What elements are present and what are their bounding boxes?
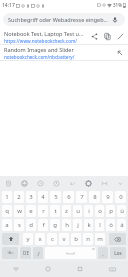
staticText: v xyxy=(62,235,66,243)
staticText: / xyxy=(37,250,40,257)
button[interactable]: v xyxy=(59,233,69,245)
staticText: d xyxy=(29,221,33,229)
button[interactable]: z xyxy=(62,205,71,217)
button[interactable]: b xyxy=(71,233,81,245)
button[interactable]: Suchbegriff oder Webadresse eingeben xyxy=(3,13,125,26)
staticText: o xyxy=(98,207,102,215)
button[interactable]: DE xyxy=(20,247,31,259)
staticText: DE xyxy=(23,250,29,256)
button[interactable]: m xyxy=(95,233,105,245)
button[interactable]: Recent apps xyxy=(64,261,96,277)
staticText: a xyxy=(5,221,9,229)
button[interactable]: Voice search xyxy=(110,15,120,25)
button[interactable]: Edit xyxy=(114,30,127,43)
button[interactable]: Theme xyxy=(80,176,96,190)
button[interactable]: k xyxy=(84,219,93,231)
staticText: y xyxy=(26,235,30,243)
staticText: i xyxy=(88,207,90,215)
button[interactable]: Back xyxy=(0,261,32,277)
staticText: q xyxy=(5,207,9,215)
button[interactable]: 8 xyxy=(89,191,100,203)
staticText: ö xyxy=(109,221,113,229)
staticText: 5 xyxy=(54,193,58,201)
button[interactable]: 6 xyxy=(63,191,74,203)
staticText: w xyxy=(17,207,22,215)
button[interactable]: s xyxy=(14,219,24,231)
button[interactable]: 7 xyxy=(76,191,87,203)
button[interactable]: e xyxy=(26,205,36,217)
button[interactable]: / xyxy=(33,247,43,259)
button[interactable]: , xyxy=(98,247,108,259)
button[interactable]: o xyxy=(95,205,104,217)
button[interactable]: Los xyxy=(110,247,126,259)
staticText: 14:17 xyxy=(2,2,15,9)
staticText: notebookcheck.com/nbcbattery/ xyxy=(4,54,75,60)
button[interactable]: u xyxy=(73,205,82,217)
staticText: k xyxy=(87,221,91,229)
button[interactable]: More xyxy=(112,176,128,190)
staticText: h xyxy=(65,221,69,229)
button[interactable]: i xyxy=(84,205,93,217)
button[interactable]: d xyxy=(26,219,36,231)
button[interactable]: f xyxy=(38,219,48,231)
button[interactable]: ü xyxy=(117,205,126,217)
staticText: n xyxy=(86,235,90,243)
button[interactable]: 1 xyxy=(2,191,12,203)
staticText: f xyxy=(42,221,45,229)
button[interactable]: Hide keyboard xyxy=(96,261,128,277)
staticText: 9 xyxy=(106,193,110,201)
staticText: 1 xyxy=(5,193,9,201)
staticText: 6 xyxy=(67,193,71,201)
button[interactable]: x xyxy=(35,233,45,245)
button[interactable]: Home xyxy=(32,261,64,277)
button[interactable]: Space xyxy=(45,247,96,259)
button[interactable]: n xyxy=(83,233,93,245)
button[interactable]: 2 xyxy=(14,191,24,203)
button[interactable]: j xyxy=(73,219,82,231)
staticText: 8 xyxy=(93,193,97,201)
button[interactable]: c xyxy=(47,233,57,245)
staticText: 0 xyxy=(119,193,123,201)
button[interactable]: Copy xyxy=(101,30,114,43)
button[interactable]: Clipboard xyxy=(0,176,16,190)
button[interactable]: Translate xyxy=(64,176,80,190)
button[interactable]: Share xyxy=(88,30,101,43)
button[interactable]: Random Images and Slider xyxy=(0,45,128,60)
button[interactable]: ä xyxy=(117,219,126,231)
button[interactable]: r xyxy=(38,205,48,217)
button[interactable]: g xyxy=(50,219,60,231)
staticText: m xyxy=(97,235,103,243)
staticText: j xyxy=(77,221,79,229)
button[interactable]: h xyxy=(62,219,71,231)
button[interactable]: 5 xyxy=(50,191,61,203)
button[interactable]: Insert suggestion xyxy=(113,46,126,59)
staticText: 4 xyxy=(41,193,45,201)
staticText: ä xyxy=(120,221,124,229)
staticText: x xyxy=(38,235,42,243)
button[interactable]: Stickers xyxy=(16,176,32,190)
staticText: s xyxy=(18,221,21,229)
button[interactable]: Shift xyxy=(2,233,19,245)
button[interactable]: 4 xyxy=(38,191,48,203)
button[interactable]: GIF xyxy=(32,176,48,190)
button[interactable]: Notebook Test, Laptop Test u... xyxy=(0,29,128,44)
staticText: Notebook Test, Laptop Test u... xyxy=(4,30,84,37)
button[interactable]: Backspace xyxy=(109,233,126,245)
button[interactable]: p xyxy=(106,205,115,217)
button[interactable]: a xyxy=(2,219,12,231)
button[interactable]: ö xyxy=(106,219,115,231)
staticText: https://www.notebookcheck.com/ xyxy=(4,38,77,44)
staticText: r xyxy=(42,207,45,215)
button[interactable]: Settings xyxy=(48,176,64,190)
button[interactable]: y xyxy=(23,233,33,245)
button[interactable]: !#= xyxy=(2,247,18,259)
button[interactable]: l xyxy=(95,219,104,231)
button[interactable]: t xyxy=(50,205,60,217)
button[interactable]: Resize xyxy=(96,176,112,190)
button[interactable]: 0 xyxy=(115,191,126,203)
button[interactable]: 9 xyxy=(102,191,113,203)
button[interactable]: q xyxy=(2,205,12,217)
button[interactable]: 3 xyxy=(26,191,36,203)
staticText: 2 xyxy=(17,193,21,201)
button[interactable]: w xyxy=(14,205,24,217)
